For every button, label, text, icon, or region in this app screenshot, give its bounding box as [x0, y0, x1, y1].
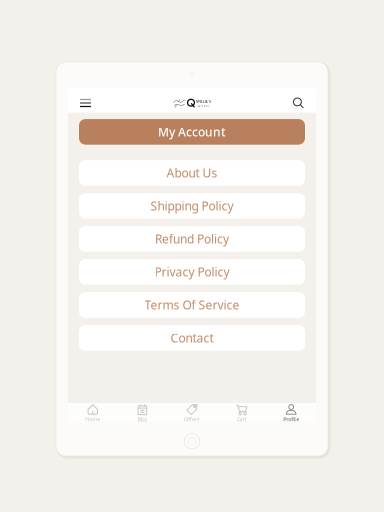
staticText: Cart [237, 416, 247, 423]
staticText: Home [85, 416, 100, 423]
button[interactable]: Profile [266, 403, 316, 422]
button[interactable]: Offers [167, 403, 217, 422]
staticText: Terms Of Service [144, 297, 239, 313]
button[interactable]: About Us [79, 160, 305, 186]
staticText: About Us [166, 165, 217, 181]
staticText: My Account [158, 124, 226, 140]
button[interactable]: Privacy Policy [79, 259, 305, 285]
button[interactable]: Shipping Policy [79, 193, 305, 219]
staticText: MILLIE'S [196, 98, 211, 104]
button[interactable]: Cart [217, 403, 266, 422]
button[interactable]: Contact [79, 325, 305, 351]
staticText: Profile [283, 416, 299, 423]
button[interactable]: Terms Of Service [79, 292, 305, 318]
staticText: Offers [184, 416, 200, 423]
button[interactable]: Search [287, 93, 309, 113]
staticText: Refund Policy [155, 231, 229, 247]
staticText: Shipping Policy [150, 198, 233, 214]
button[interactable]: My Account [79, 119, 305, 145]
button[interactable]: Refund Policy [79, 226, 305, 252]
button[interactable]: Menu [74, 93, 96, 113]
staticText: Contact [170, 330, 213, 346]
staticText: Q U E S T [198, 104, 209, 107]
staticText: Blog [137, 416, 147, 423]
staticText: Privacy Policy [154, 264, 229, 280]
button[interactable]: Blog [118, 403, 167, 422]
button[interactable]: Home [68, 403, 118, 422]
